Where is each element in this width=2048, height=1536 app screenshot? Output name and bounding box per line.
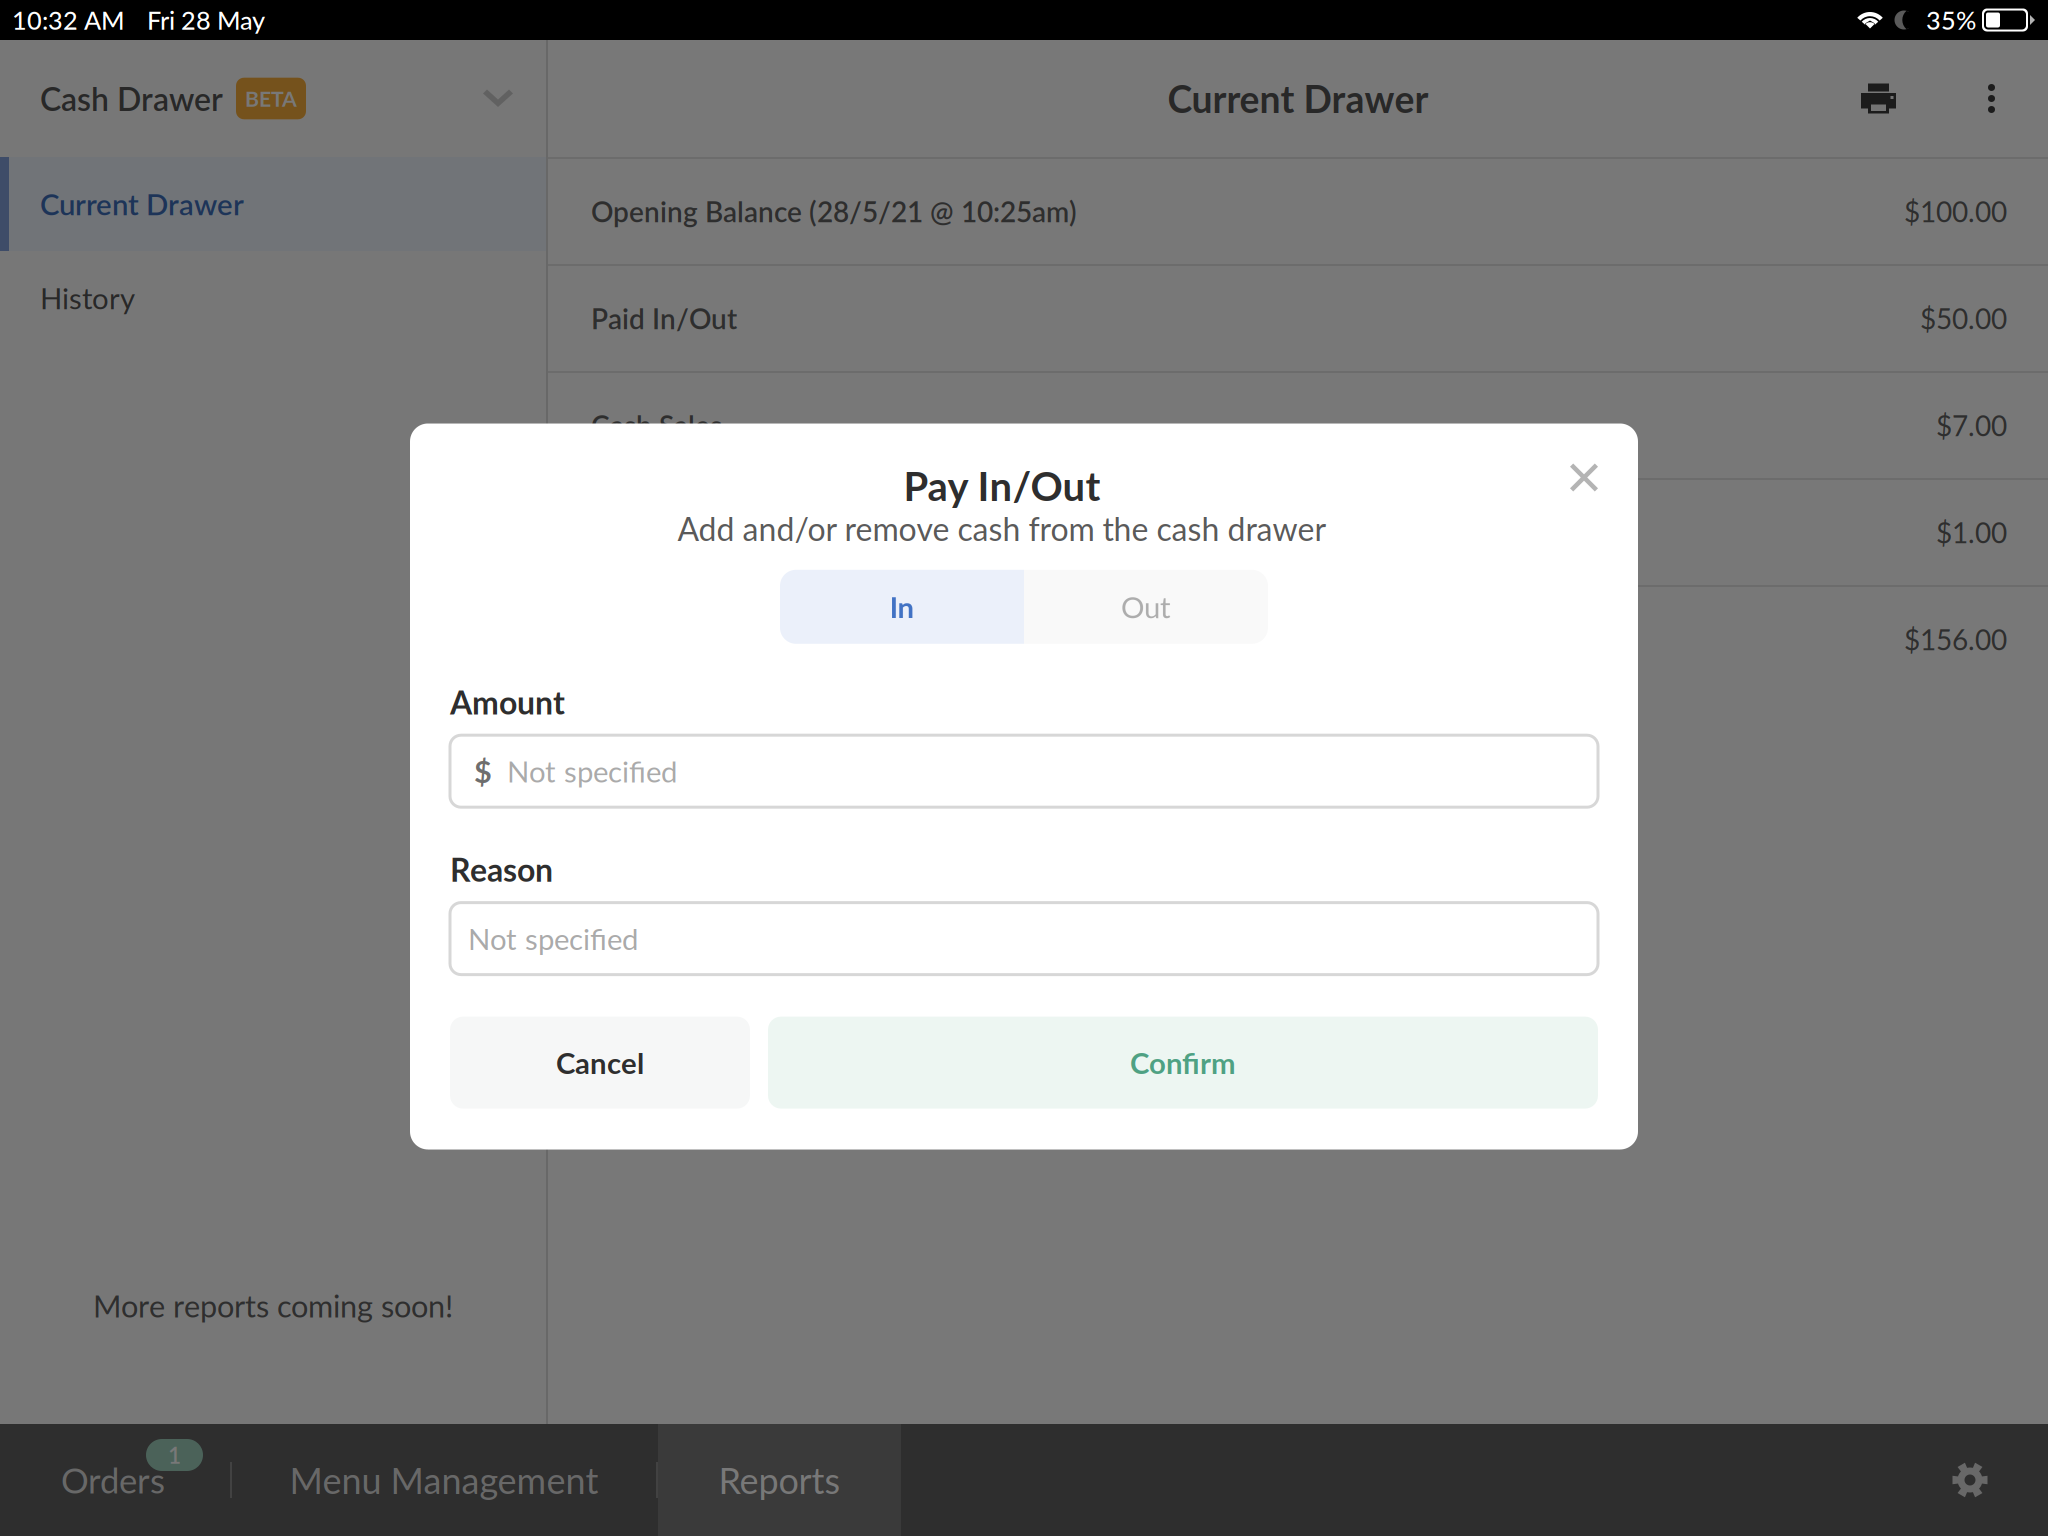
staticText: Cash Refunds [591, 516, 761, 549]
button[interactable]: Cancel [450, 1017, 750, 1109]
staticText: $ [474, 753, 492, 790]
staticText: Reports [718, 1458, 840, 1502]
button[interactable]: Settings [1937, 1447, 2003, 1513]
staticText: Current Drawer [40, 186, 244, 222]
button[interactable]: Reports [658, 1424, 901, 1536]
staticText: $100.00 [1904, 195, 2007, 228]
staticText: Not specified [507, 754, 677, 789]
staticText: $50.00 [1920, 302, 2007, 335]
staticText: Cancel [556, 1045, 644, 1080]
button[interactable]: Orders [0, 1424, 230, 1536]
button[interactable]: Print [1849, 71, 1908, 125]
staticText: History [40, 280, 135, 316]
staticText: Orders [61, 1459, 165, 1501]
staticText: Cash Drawer [40, 79, 223, 118]
staticText: Add and/or remove cash from the cash dra… [677, 509, 1326, 548]
staticText: Fri 28 May [147, 5, 265, 35]
button[interactable]: In [780, 570, 1024, 644]
staticText: Not specified [468, 921, 638, 956]
staticText: 35% [1926, 5, 1976, 35]
button[interactable]: Menu Management [232, 1424, 656, 1536]
staticText: More reports coming soon! [93, 1287, 453, 1324]
staticText: Out [1121, 589, 1171, 624]
staticText: 1 [168, 1441, 181, 1469]
button[interactable]: Close [1556, 449, 1612, 505]
staticText: Confirm [1130, 1045, 1236, 1080]
staticText: Pay In/Out [903, 461, 1100, 509]
staticText: Opening Balance (28/5/21 @ 10:25am) [591, 195, 1077, 228]
staticText: $156.00 [1904, 623, 2007, 656]
button[interactable]: More options [1976, 72, 2007, 125]
staticText: Menu Management [289, 1458, 598, 1502]
staticText: Paid In/Out [591, 302, 737, 335]
staticText: Current Drawer [1167, 76, 1428, 121]
staticText: Cash Sales [591, 409, 722, 442]
button[interactable]: Confirm [768, 1017, 1598, 1109]
staticText: $1.00 [1936, 516, 2007, 549]
button[interactable]: Current Drawer [0, 157, 546, 251]
button[interactable]: History [0, 251, 546, 345]
staticText: In [889, 589, 914, 624]
button[interactable]: Cash Drawer [0, 40, 546, 157]
staticText: Expected In Drawer [591, 623, 836, 656]
staticText: Amount [450, 683, 565, 721]
staticText: 10:32 AM [12, 5, 125, 35]
staticText: BETA [245, 86, 297, 111]
button[interactable]: Out [1024, 570, 1268, 644]
staticText: Reason [450, 850, 553, 889]
staticText: $7.00 [1936, 409, 2007, 442]
